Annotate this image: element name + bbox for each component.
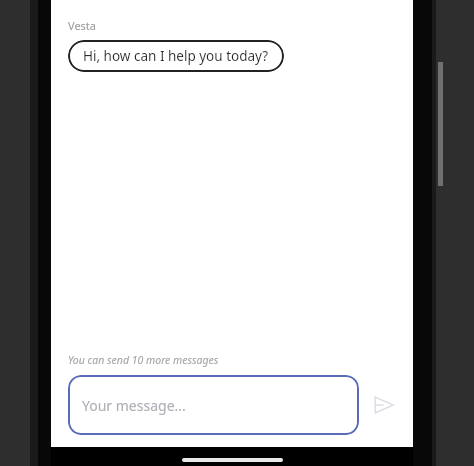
button[interactable]: Send [367,388,401,422]
staticText: Vesta [68,18,96,33]
staticText: You can send 10 more messages [68,353,219,367]
button[interactable]: Hi, how can I help you today? [68,40,284,72]
staticText: Your message... [82,396,186,415]
button[interactable]: Your message... [68,375,359,435]
staticText: Hi, how can I help you today? [83,47,269,65]
